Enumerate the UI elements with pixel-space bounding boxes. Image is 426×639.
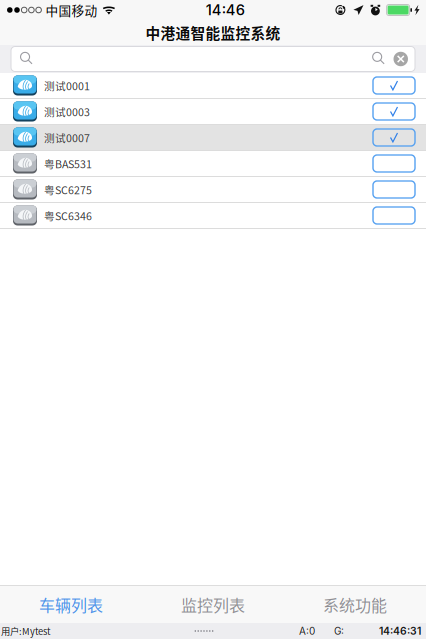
button[interactable]: 测试0003 (0, 99, 426, 125)
staticText: 粤SC6346 (44, 208, 92, 223)
staticText: 系统功能 (323, 593, 387, 616)
staticText: 14:46:31 (379, 625, 421, 637)
button[interactable]: 测试0001 (0, 73, 426, 99)
staticText: 14:46 (206, 1, 245, 19)
button[interactable]: 监控列表 (142, 586, 284, 623)
button[interactable]: 车辆列表 (0, 586, 142, 623)
staticText: 监控列表 (181, 593, 245, 616)
staticText: 粤BAS531 (44, 156, 92, 171)
staticText: A:0 (299, 625, 315, 637)
staticText: 中国移动 (45, 1, 97, 19)
button[interactable]: 系统功能 (284, 586, 426, 623)
button[interactable]: 测试0007 (0, 125, 426, 151)
staticText: 测试0003 (44, 104, 90, 119)
staticText: 用户:Mytest (1, 624, 51, 638)
button[interactable]: 粤SC6346 (0, 203, 426, 229)
staticText: 车辆列表 (39, 593, 103, 616)
staticText: G: (334, 625, 344, 637)
button[interactable]: 粤SC6275 (0, 177, 426, 203)
staticText: 测试0007 (44, 130, 90, 145)
staticText: 中港通智能监控系统 (145, 22, 280, 43)
staticText: 粤SC6275 (44, 182, 92, 197)
staticText: 测试0001 (44, 78, 90, 93)
button[interactable]: 粤BAS531 (0, 151, 426, 177)
